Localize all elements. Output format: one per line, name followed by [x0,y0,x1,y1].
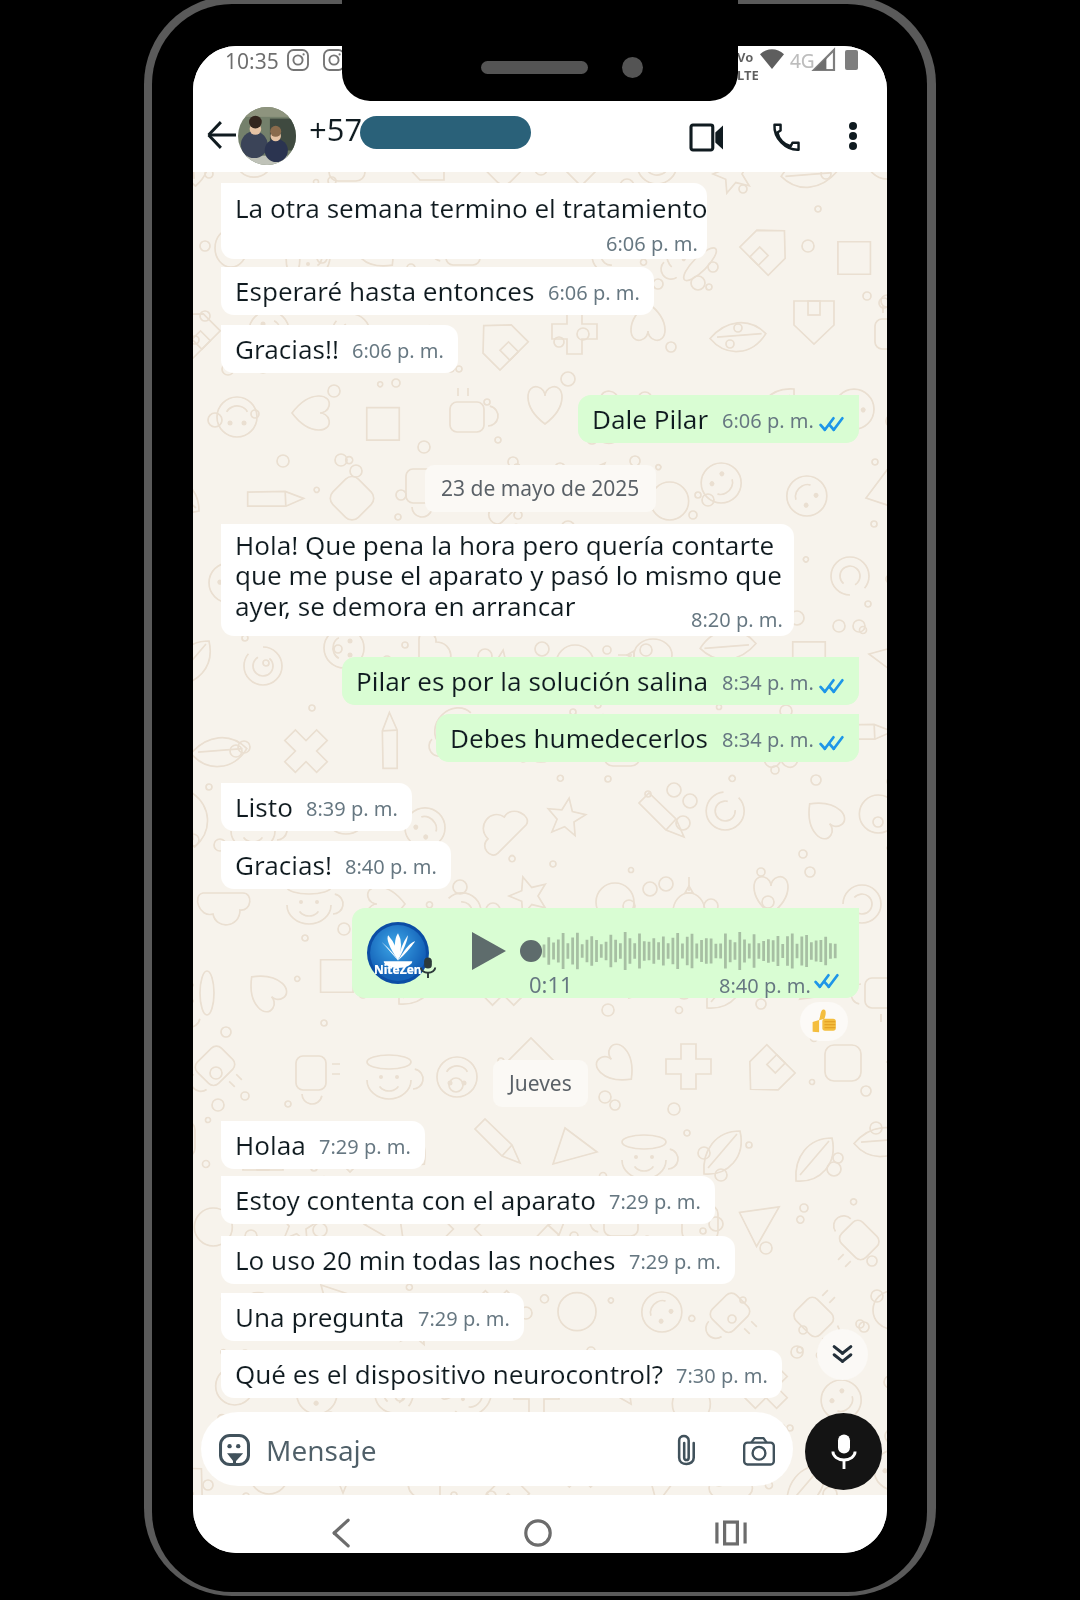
staticText: Una pregunta [235,1299,405,1334]
button[interactable]: Back [317,1509,365,1553]
staticText: NiteZen [374,961,422,977]
button[interactable]: Attach [669,1432,705,1468]
button[interactable]: Camera [741,1433,777,1469]
button[interactable]: Esperaré hasta entonces [221,267,654,315]
button[interactable]: Estoy contenta con el aparato [221,1176,715,1224]
button[interactable]: Qué es el dispositivo neurocontrol? [221,1350,782,1398]
staticText: Lo uso 20 min todas las noches [235,1242,616,1277]
staticText: LTE [737,66,759,84]
staticText: 23 de mayo de 2025 [441,474,640,503]
staticText: +57 [309,108,363,150]
staticText: 8:40 p. m. [345,853,437,880]
button[interactable]: La otra semana termino el tratamiento [221,183,707,259]
button[interactable]: Una pregunta [221,1293,524,1341]
staticText: 7:29 p. m. [418,1305,510,1332]
staticText: 7:29 p. m. [629,1248,721,1275]
staticText: Holaa [235,1127,306,1162]
staticText: Estoy contenta con el aparato [235,1182,596,1217]
button[interactable]: Contact name [360,116,531,149]
button[interactable]: More options [827,110,879,162]
button[interactable]: 23 de mayo de 2025 [425,465,656,512]
button[interactable]: Gracias!! [221,325,458,373]
staticText: Dale Pilar [592,401,709,436]
button[interactable]: Pilar es por la solución salina [342,657,859,705]
staticText: Gracias! [235,847,332,882]
button[interactable]: Voice message [352,908,859,998]
staticText: Hola! Que pena la hora pero quería conta… [235,527,782,624]
button[interactable]: Home [514,1509,562,1553]
button[interactable]: Gracias! [221,841,451,889]
staticText: 7:29 p. m. [319,1133,411,1160]
button[interactable]: Hola! Que pena la hora pero quería conta… [221,524,794,636]
button[interactable]: Recent apps [707,1509,755,1553]
staticText: 7:29 p. m. [609,1188,701,1215]
button[interactable]: Video call [678,108,736,166]
button[interactable]: Contact photo [238,107,296,165]
staticText: 6:06 p. m. [606,230,698,257]
staticText: La otra semana termino el tratamiento [235,190,707,225]
button[interactable]: +57 [309,108,363,150]
button[interactable]: Message input [201,1412,793,1486]
staticText: Vo [737,48,754,66]
staticText: Esperaré hasta entonces [235,273,535,308]
staticText: 8:34 p. m. [722,669,814,696]
staticText: 10:35 [225,47,279,76]
staticText: Debes humedecerlos [450,720,709,755]
button[interactable]: Lo uso 20 min todas las noches [221,1236,735,1284]
staticText: 8:39 p. m. [306,795,398,822]
button[interactable]: Scroll to bottom [817,1329,868,1380]
staticText: 6:06 p. m. [722,407,814,434]
staticText: 8:34 p. m. [722,726,814,753]
staticText: 8:40 p. m. [719,972,811,998]
staticText: Listo [235,789,293,824]
button[interactable]: Back [199,112,245,158]
button[interactable]: Debes humedecerlos [436,714,859,762]
staticText: 7:30 p. m. [676,1362,768,1389]
staticText: Jueves [509,1069,572,1098]
staticText: Qué es el dispositivo neurocontrol? [235,1356,663,1391]
button[interactable]: Holaa [221,1121,425,1169]
staticText: 8:20 p. m. [691,606,783,633]
staticText: Pilar es por la solución salina [356,663,709,698]
staticText: 6:06 p. m. [352,337,444,364]
button[interactable]: Dale Pilar [578,395,859,443]
button[interactable]: Record voice message [805,1413,882,1490]
staticText: Gracias!! [235,331,339,366]
button[interactable]: Thumbs up reaction [800,1002,848,1041]
button[interactable]: Call [756,108,814,166]
button[interactable]: Jueves [493,1060,588,1107]
staticText: 0:11 [529,969,573,998]
staticText: 4G [790,48,815,74]
button[interactable]: Listo [221,783,412,831]
staticText: 6:06 p. m. [548,279,640,306]
staticText: Mensaje [266,1431,377,1469]
